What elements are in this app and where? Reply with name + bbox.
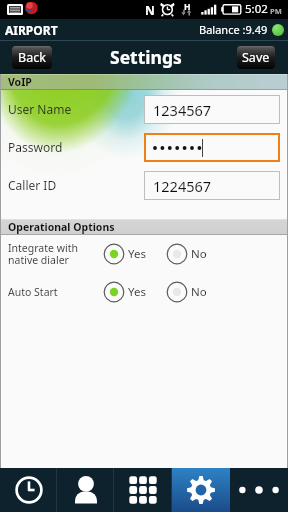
staticText: PM	[270, 6, 282, 16]
staticText: H	[184, 1, 191, 13]
staticText: Operational Options	[8, 220, 115, 234]
button[interactable]: Settings	[172, 468, 230, 512]
button[interactable]: No	[166, 281, 207, 303]
staticText: No	[191, 246, 207, 262]
button[interactable]: Save	[237, 46, 275, 69]
staticText: Caller ID	[8, 177, 57, 193]
staticText: Auto Start	[8, 285, 58, 299]
staticText: User Name	[8, 101, 72, 117]
button[interactable]: Recents	[0, 468, 57, 512]
staticText: 1224567	[153, 176, 212, 196]
staticText: Settings	[110, 45, 182, 69]
button[interactable]: More	[230, 468, 288, 512]
staticText: 1234567	[153, 100, 212, 120]
button[interactable]: 1234567	[144, 95, 280, 124]
staticText: Password	[8, 139, 63, 155]
staticText: 5:02	[245, 1, 268, 17]
staticText: N	[145, 2, 155, 18]
button[interactable]: No	[166, 243, 207, 265]
staticText: Integrate with native dialer	[8, 241, 78, 267]
button[interactable]: Keypad	[114, 468, 172, 512]
button[interactable]: Back	[12, 46, 52, 69]
button[interactable]: 1224567	[144, 171, 280, 200]
button[interactable]: Contacts	[57, 468, 114, 512]
staticText: Save	[242, 49, 270, 66]
staticText: Yes	[128, 246, 146, 262]
staticText: AIRPORT	[5, 22, 58, 38]
button[interactable]: Yes	[103, 243, 146, 265]
button[interactable]	[144, 133, 280, 162]
button[interactable]: Yes	[103, 281, 146, 303]
staticText: Yes	[128, 284, 146, 300]
staticText: No	[191, 284, 207, 300]
staticText: Balance :9.49	[199, 22, 268, 37]
staticText: VoIP	[8, 75, 32, 89]
staticText: Back	[18, 49, 46, 66]
